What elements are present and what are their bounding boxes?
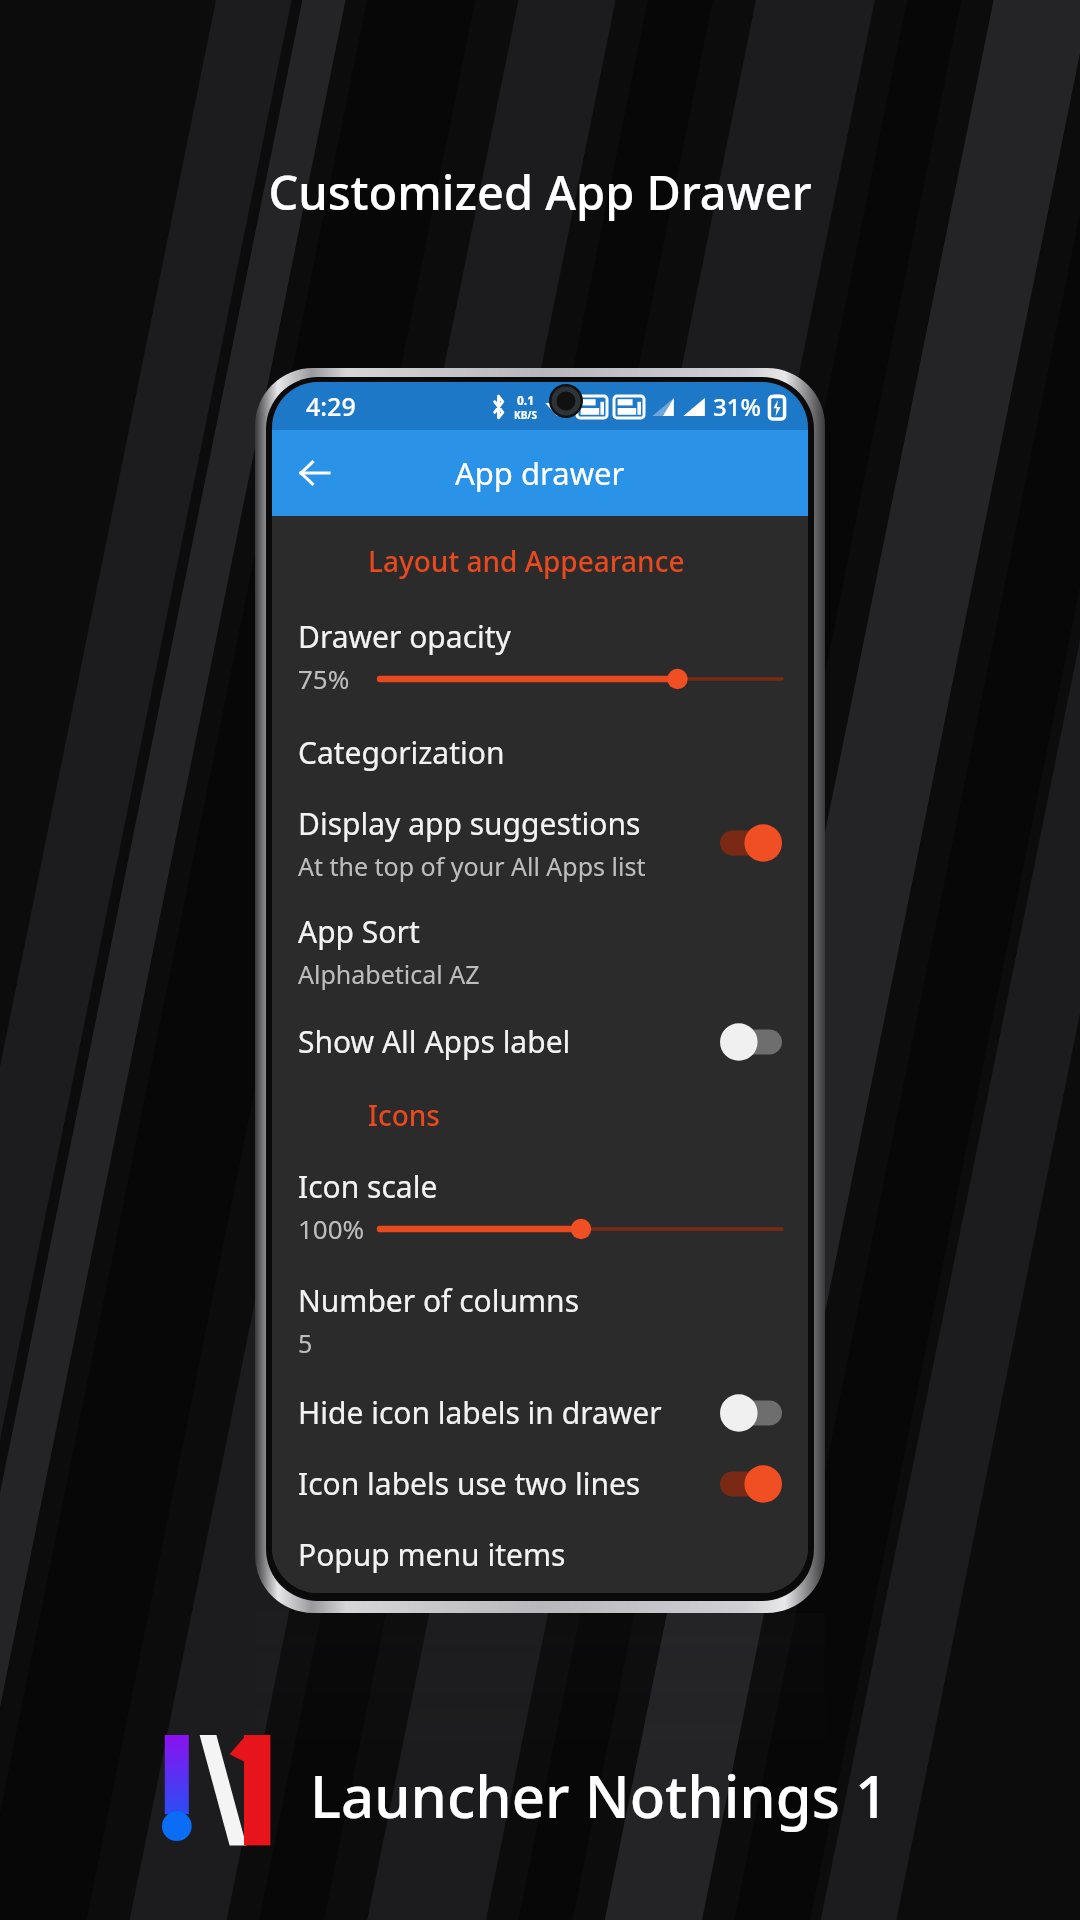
staticText: Drawer opacity xyxy=(298,616,511,657)
staticText: At the top of your All Apps list xyxy=(298,849,646,883)
staticText: Customized App Drawer xyxy=(0,160,1080,224)
staticText: Number of columns xyxy=(298,1280,580,1321)
staticText: Icons xyxy=(368,1096,440,1134)
staticText: Show All Apps label xyxy=(298,1021,571,1062)
staticText: 100% xyxy=(298,1211,380,1246)
staticText: KB/S xyxy=(514,408,537,422)
staticText: Display app suggestions xyxy=(298,803,641,844)
staticText: Hide icon labels in drawer xyxy=(298,1392,662,1433)
staticText: Icon scale xyxy=(298,1166,438,1207)
staticText: App Sort xyxy=(298,911,420,952)
staticText: 4:29 xyxy=(306,389,356,423)
staticText: Icon labels use two lines xyxy=(298,1463,641,1504)
button[interactable]: Number of columns xyxy=(272,1276,808,1364)
button[interactable]: Show All Apps label xyxy=(272,1017,808,1066)
button[interactable]: App Sort xyxy=(272,907,808,995)
staticText: 31% xyxy=(713,390,761,423)
staticText: Categorization xyxy=(298,732,505,773)
button[interactable]: Back xyxy=(284,442,346,504)
button[interactable]: Icon labels use two lines xyxy=(272,1459,808,1508)
button[interactable]: Drawer opacity xyxy=(272,614,808,698)
staticText: Popup menu items xyxy=(298,1534,566,1575)
button[interactable]: Popup menu items xyxy=(272,1530,808,1579)
staticText: Launcher Nothings 1 xyxy=(310,1756,889,1835)
staticText: 5 xyxy=(298,1326,313,1360)
staticText: App drawer xyxy=(455,452,625,494)
button[interactable]: Icon scale xyxy=(272,1164,808,1248)
staticText: 0.1 xyxy=(517,392,535,408)
button[interactable]: Display app suggestions xyxy=(272,799,808,887)
button[interactable]: Hide icon labels in drawer xyxy=(272,1388,808,1437)
staticText: Alphabetical AZ xyxy=(298,957,480,991)
staticText: Layout and Appearance xyxy=(368,542,685,580)
staticText: 75% xyxy=(298,661,380,696)
button[interactable]: Categorization xyxy=(272,728,808,777)
